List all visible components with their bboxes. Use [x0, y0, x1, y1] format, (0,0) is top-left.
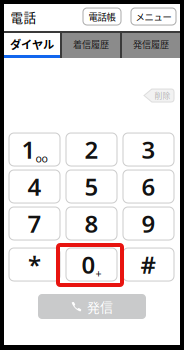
staticText: +	[95, 266, 101, 280]
button[interactable]: 5	[66, 170, 117, 203]
staticText: 5	[84, 171, 98, 202]
button[interactable]: 4	[9, 170, 60, 203]
staticText: 電話	[10, 8, 36, 26]
button[interactable]: 8	[66, 207, 117, 240]
staticText: 0	[81, 249, 95, 280]
staticText: 発信	[87, 297, 113, 316]
button[interactable]: 2	[66, 133, 117, 166]
staticText: ダイヤル	[10, 36, 54, 52]
staticText: 1	[21, 134, 35, 165]
staticText: 3	[141, 134, 155, 165]
staticText: 9	[141, 208, 155, 239]
staticText: 8	[84, 208, 98, 239]
staticText: 2	[84, 134, 98, 165]
button[interactable]: 6	[123, 170, 174, 203]
button[interactable]: 電話帳	[83, 8, 121, 25]
button[interactable]: *	[9, 248, 60, 281]
button[interactable]: 着信履歴	[62, 33, 120, 58]
button[interactable]: 発信履歴	[122, 33, 180, 58]
staticText: 6	[141, 171, 155, 202]
button[interactable]: ダイヤル	[4, 33, 60, 58]
button[interactable]: 1	[9, 133, 60, 166]
button[interactable]: 発信	[38, 294, 146, 319]
staticText: *	[28, 249, 41, 280]
button[interactable]: メニュー	[131, 8, 176, 25]
button[interactable]: 9	[123, 207, 174, 240]
button[interactable]: #	[123, 248, 174, 281]
button[interactable]: 0	[66, 248, 117, 281]
button[interactable]: 削除	[144, 89, 174, 102]
button[interactable]: 3	[123, 133, 174, 166]
button[interactable]: 7	[9, 207, 60, 240]
staticText: 発信履歴	[133, 37, 169, 50]
staticText: 4	[27, 171, 41, 202]
staticText: 着信履歴	[73, 37, 109, 50]
staticText: 電話帳	[88, 10, 115, 23]
staticText: メニュー	[135, 10, 171, 23]
staticText: #	[140, 249, 156, 280]
staticText: oo	[35, 151, 47, 165]
staticText: 削除	[154, 90, 170, 101]
staticText: 7	[27, 208, 41, 239]
